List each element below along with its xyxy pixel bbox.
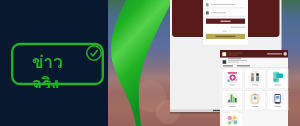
staticText: จริง	[32, 70, 60, 88]
staticText: ข่าว	[32, 48, 63, 75]
button[interactable]: ข่าวจริง verified stamp	[11, 40, 104, 88]
